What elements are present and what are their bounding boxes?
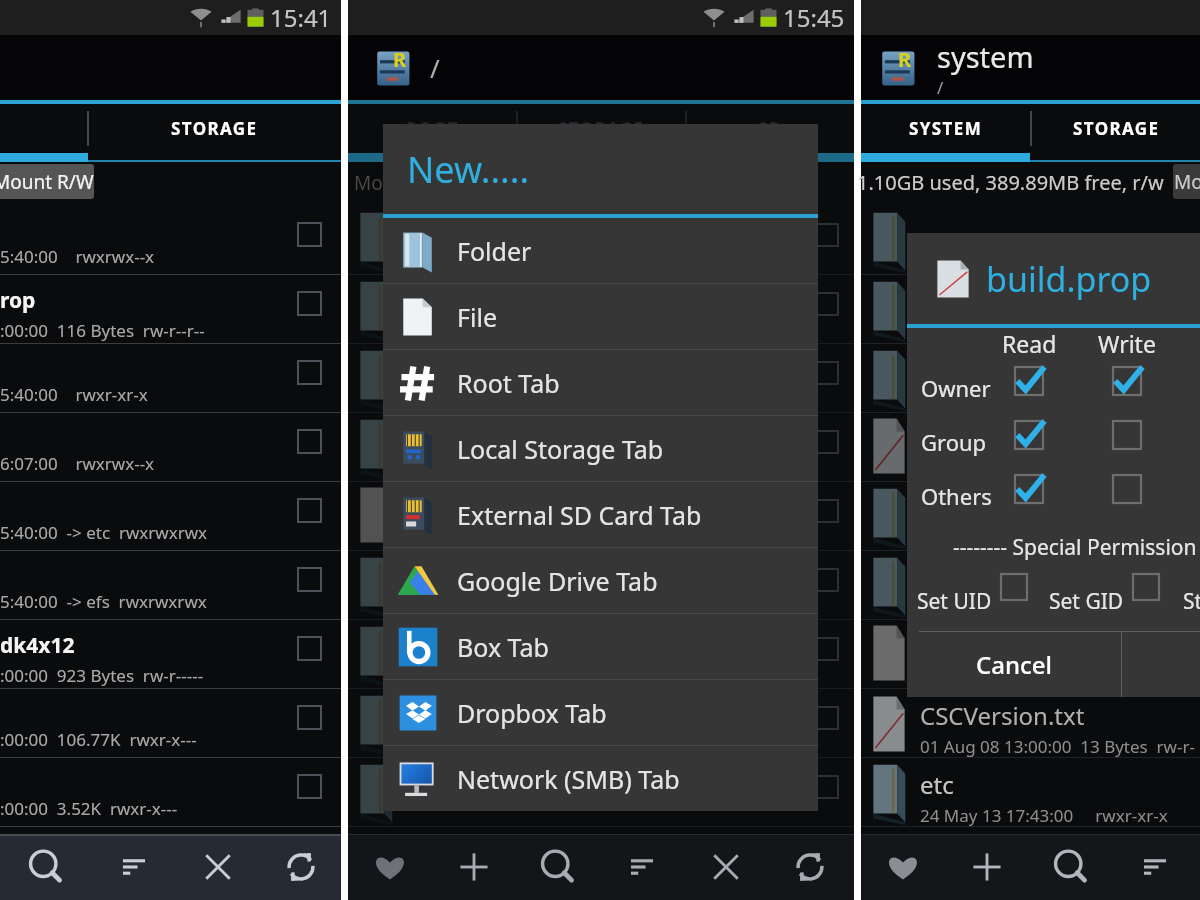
button[interactable]: New: [945, 834, 1029, 900]
button[interactable]: [861, 620, 1200, 689]
button[interactable]: CSCVersion.txt: [861, 689, 1200, 758]
button[interactable]: Select: [298, 223, 321, 246]
button[interactable]: :00:00 106.77K rwxr-x---: [0, 689, 341, 758]
button[interactable]: Mount R/W: [1173, 164, 1200, 199]
button[interactable]: Select item: [816, 362, 838, 384]
button[interactable]: 5:40:00 rwxr-xr-x: [0, 344, 341, 413]
button[interactable]: Select: [298, 430, 321, 453]
button[interactable]: Close: [176, 834, 260, 900]
button[interactable]: STORAGE: [88, 104, 341, 153]
button[interactable]: Group read: [1013, 419, 1045, 451]
button[interactable]: [861, 344, 1200, 413]
button[interactable]: External SD Card Tab: [383, 482, 818, 548]
staticText: Group: [921, 427, 987, 457]
button[interactable]: 6:07:00 rwxrwx--x: [0, 413, 341, 482]
staticText: :00:00 923 Bytes rw-r-----: [0, 664, 204, 687]
staticText: 5:40:00 -> etc rwxrwxrwx: [0, 521, 208, 544]
button[interactable]: Sort: [1113, 834, 1197, 900]
staticText: R: [898, 46, 912, 73]
button[interactable]: STORAGE: [518, 104, 685, 153]
button[interactable]: Select item: [348, 758, 854, 827]
button[interactable]: Select: [298, 775, 321, 798]
button[interactable]: New: [432, 834, 516, 900]
button[interactable]: Select item: [816, 224, 838, 246]
staticText: -------- Special Permission: [953, 533, 1197, 562]
button[interactable]: Search: [0, 834, 92, 900]
button[interactable]: 5:40:00 -> etc rwxrwxrwx: [0, 482, 341, 551]
button[interactable]: Set GID: [1131, 572, 1161, 602]
button[interactable]: Select item: [348, 413, 854, 482]
button[interactable]: Select item: [348, 275, 854, 344]
button[interactable]: Refresh: [260, 834, 341, 900]
button[interactable]: Select item: [348, 689, 854, 758]
button[interactable]: Sort: [600, 834, 684, 900]
staticText: 5:40:00 rwxr-xr-x: [0, 383, 148, 406]
button[interactable]: STORAGE: [1032, 104, 1200, 153]
staticText: CSCVersion.txt: [920, 699, 1085, 732]
button[interactable]: Network (SMB) Tab: [383, 746, 818, 811]
button[interactable]: ROOT: [348, 104, 516, 153]
button[interactable]: Select item: [348, 551, 854, 620]
staticText: 6:07:00 rwxrwx--x: [0, 452, 155, 475]
staticText: Google Drive Tab: [457, 564, 658, 598]
button[interactable]: Favourites: [861, 834, 945, 900]
button[interactable]: Select item: [816, 431, 838, 453]
staticText: Network (SMB) Tab: [457, 762, 680, 796]
button[interactable]: Others read: [1013, 473, 1045, 505]
button[interactable]: Select: [298, 637, 321, 660]
button[interactable]: [861, 551, 1200, 620]
button[interactable]: Box Tab: [383, 614, 818, 680]
button[interactable]: Select item: [816, 569, 838, 591]
button[interactable]: [861, 482, 1200, 551]
button[interactable]: SD: [687, 104, 854, 153]
button[interactable]: Select item: [348, 344, 854, 413]
staticText: Folder: [457, 234, 532, 268]
button[interactable]: Sort: [92, 834, 176, 900]
button[interactable]: 5:40:00 -> efs rwxrwxrwx: [0, 551, 341, 620]
button[interactable]: Select: [298, 568, 321, 591]
button[interactable]: etc: [861, 758, 1200, 827]
button[interactable]: [861, 413, 1200, 482]
button[interactable]: Select item: [816, 293, 838, 315]
button[interactable]: Mount R/W: [0, 164, 94, 199]
button[interactable]: Others write: [1111, 473, 1143, 505]
button[interactable]: :00:00 3.52K rwxr-x---: [0, 758, 341, 827]
button[interactable]: Group write: [1111, 419, 1143, 451]
button[interactable]: Dropbox Tab: [383, 680, 818, 746]
staticText: system: [937, 37, 1034, 76]
button[interactable]: Cancel: [907, 632, 1121, 697]
button[interactable]: [861, 275, 1200, 344]
button[interactable]: File: [383, 284, 818, 350]
button[interactable]: Select item: [816, 638, 838, 660]
button[interactable]: Refresh: [768, 834, 852, 900]
button[interactable]: Close: [684, 834, 768, 900]
button[interactable]: Select: [298, 361, 321, 384]
staticText: 1.10GB used, 389.89MB free, r/w: [857, 169, 1164, 196]
button[interactable]: Owner write: [1111, 365, 1143, 397]
button[interactable]: Select: [298, 706, 321, 729]
button[interactable]: Select item: [348, 620, 854, 689]
button[interactable]: SYSTEM: [861, 104, 1030, 153]
button[interactable]: Select: [298, 499, 321, 522]
button[interactable]: Set UID: [999, 572, 1029, 602]
button[interactable]: rop: [0, 275, 341, 344]
button[interactable]: [861, 206, 1200, 275]
button[interactable]: Select item: [816, 707, 838, 729]
button[interactable]: 5:40:00 rwxrwx--x: [0, 206, 341, 275]
button[interactable]: Google Drive Tab: [383, 548, 818, 614]
button[interactable]: Select item: [816, 500, 838, 522]
button[interactable]: Select: [298, 292, 321, 315]
button[interactable]: Owner read: [1013, 365, 1045, 397]
button[interactable]: Select item: [348, 482, 854, 551]
button[interactable]: Search: [516, 834, 600, 900]
button[interactable]: Select item: [816, 776, 838, 798]
button[interactable]: Root Tab: [383, 350, 818, 416]
button[interactable]: Folder: [383, 218, 818, 284]
button[interactable]: dk4x12: [0, 620, 341, 689]
button[interactable]: Search: [1029, 834, 1113, 900]
staticText: 15:45: [783, 1, 845, 34]
button[interactable]: Local Storage Tab: [383, 416, 818, 482]
button[interactable]: Favourites: [348, 834, 432, 900]
button[interactable]: Select item: [348, 206, 854, 275]
